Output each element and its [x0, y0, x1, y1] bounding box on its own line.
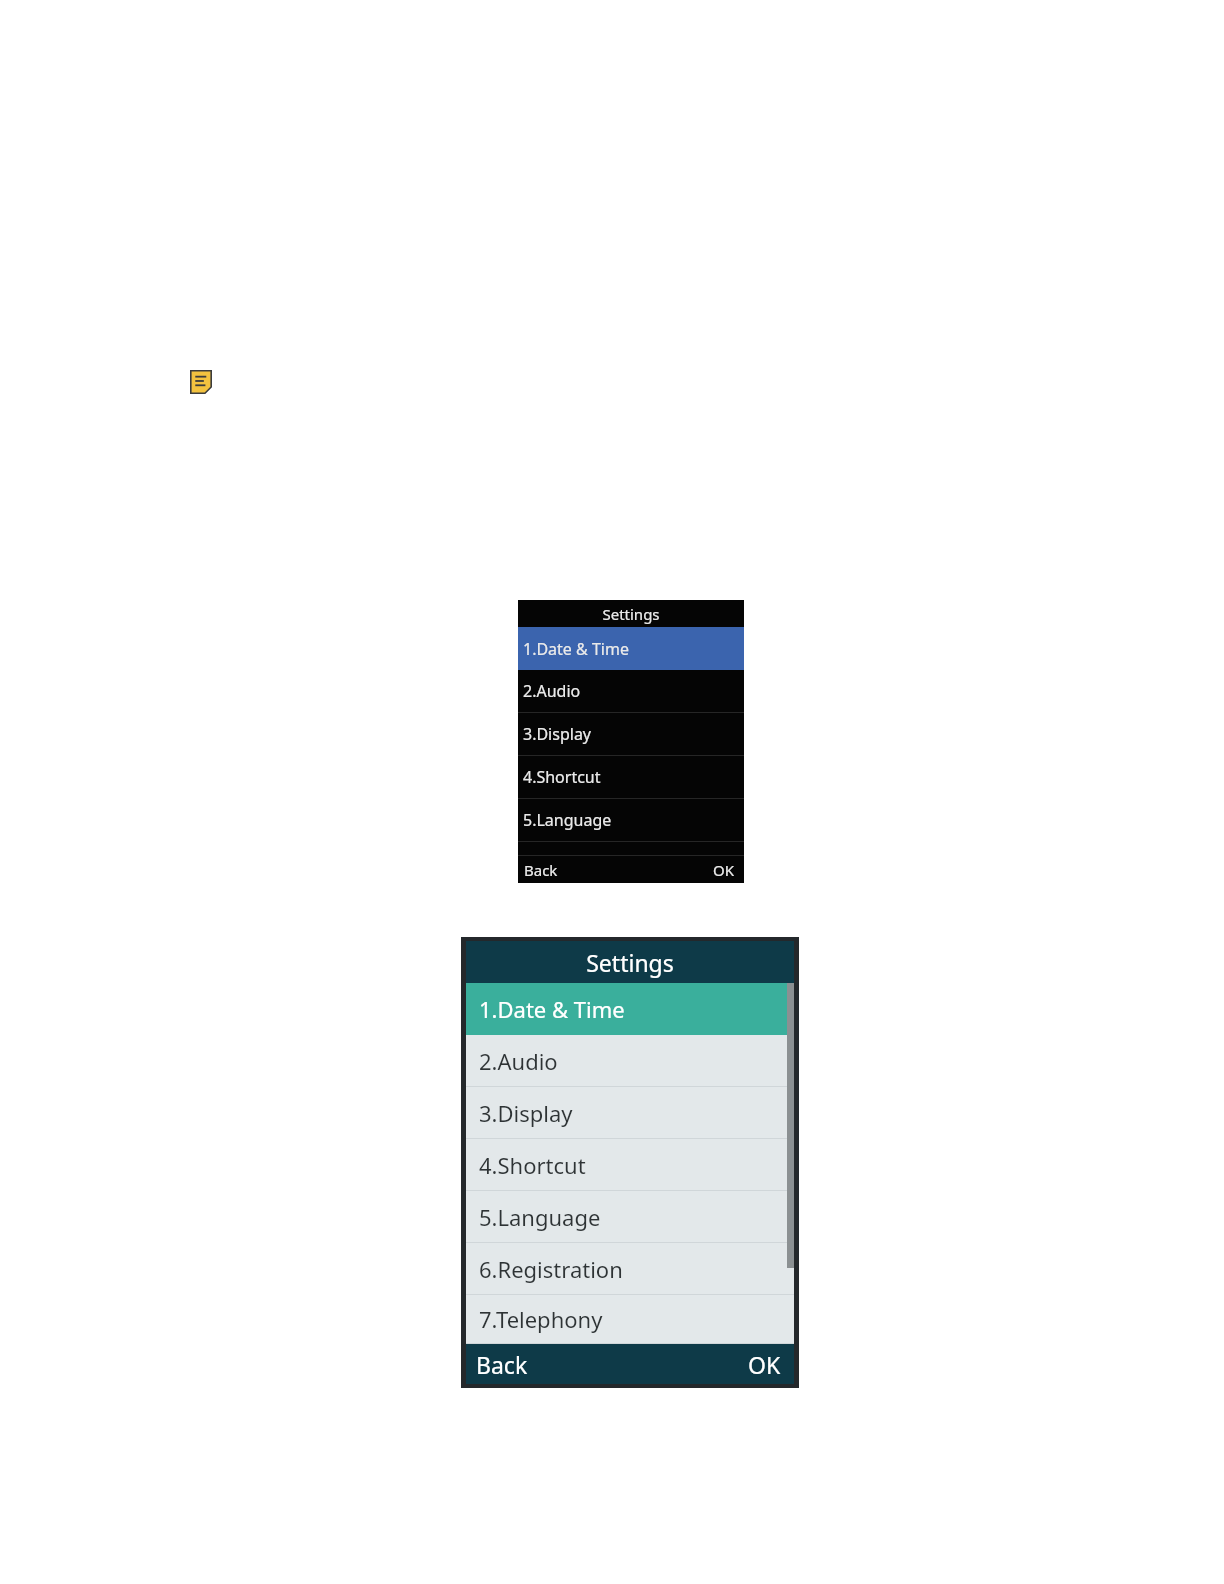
button[interactable]: Back [524, 860, 558, 880]
staticText: OK [713, 860, 735, 880]
staticText: 4.Shortcut [523, 766, 601, 788]
staticText: 7.Telephony [479, 1304, 603, 1334]
button[interactable]: OK [748, 1349, 781, 1380]
button[interactable]: 3.Display [518, 713, 744, 756]
button[interactable]: Back [476, 1349, 528, 1380]
staticText: 4.Shortcut [479, 1150, 586, 1180]
button[interactable]: 3.Display [466, 1087, 794, 1139]
button[interactable]: 5.Language [518, 799, 744, 842]
button[interactable]: 4.Shortcut [466, 1139, 794, 1191]
staticText: Settings [586, 947, 674, 978]
button[interactable]: 1.Date & Time [518, 627, 744, 670]
staticText: OK [748, 1349, 781, 1380]
staticText: 5.Language [479, 1202, 601, 1232]
staticText: 2.Audio [479, 1046, 558, 1076]
staticText: 6.Registration [479, 1254, 623, 1284]
button[interactable]: 4.Shortcut [518, 756, 744, 799]
staticText: 1.Date & Time [479, 994, 625, 1024]
button[interactable]: 6.Registration [466, 1243, 794, 1295]
button[interactable]: 7.Telephony [466, 1295, 794, 1344]
staticText: 5.Language [523, 809, 612, 831]
button[interactable]: OK [713, 860, 735, 880]
staticText: 1.Date & Time [523, 638, 629, 660]
button[interactable]: 5.Language [466, 1191, 794, 1243]
staticText: Back [524, 860, 558, 880]
button[interactable]: 2.Audio [518, 670, 744, 713]
button[interactable]: 2.Audio [466, 1035, 794, 1087]
button[interactable]: 1.Date & Time [466, 983, 794, 1035]
staticText: 2.Audio [523, 680, 581, 702]
staticText: 3.Display [523, 723, 592, 745]
staticText: Settings [602, 604, 660, 624]
staticText: 3.Display [479, 1098, 573, 1128]
staticText: Back [476, 1349, 528, 1380]
other: Note [190, 370, 212, 394]
